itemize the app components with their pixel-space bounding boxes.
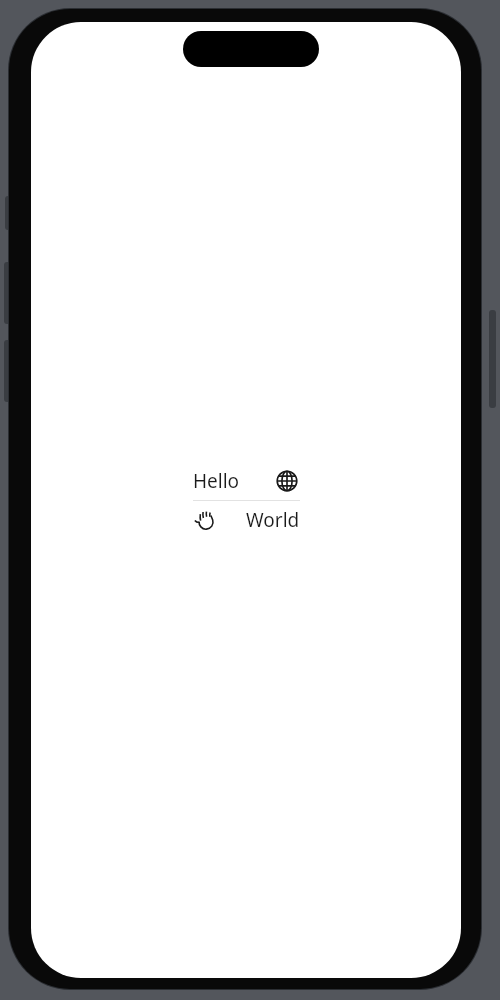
staticText: Hello bbox=[193, 468, 240, 494]
button[interactable]: Hello bbox=[193, 462, 300, 500]
button[interactable]: Waving hand bbox=[193, 501, 300, 539]
other: Waving hand bbox=[193, 507, 219, 533]
other: Globe bbox=[274, 468, 300, 494]
staticText: World bbox=[246, 507, 300, 533]
